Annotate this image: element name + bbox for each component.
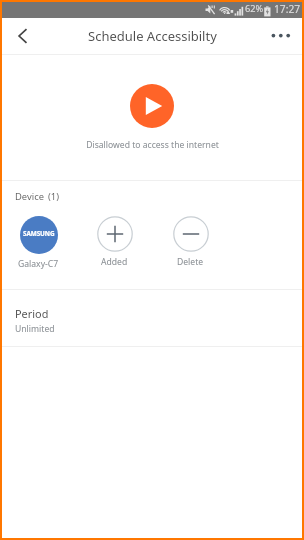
staticText: Device — [15, 190, 44, 203]
button[interactable]: Add — [85, 216, 144, 268]
other: Add — [97, 216, 133, 252]
staticText: 17:27 — [274, 2, 301, 16]
staticText: Unlimited — [15, 323, 55, 335]
other: Delete — [173, 216, 209, 252]
staticText: Period — [15, 306, 49, 321]
button[interactable]: Back — [2, 18, 38, 54]
staticText: (1) — [48, 190, 60, 203]
staticText: Galaxy-C7 — [18, 258, 59, 270]
button[interactable]: More options — [266, 18, 302, 54]
button[interactable]: Delete — [161, 216, 220, 268]
staticText: Added — [101, 256, 128, 268]
staticText: Delete — [177, 256, 204, 268]
button[interactable]: SAMSUNG — [9, 216, 68, 270]
staticText: 62% — [245, 2, 264, 15]
staticText: SAMSUNG — [23, 229, 55, 238]
staticText: Schedule Accessibilty — [88, 27, 217, 45]
button[interactable]: Period — [2, 290, 302, 346]
staticText: Disallowed to access the internet — [86, 139, 219, 151]
button[interactable]: Play — [130, 84, 174, 128]
